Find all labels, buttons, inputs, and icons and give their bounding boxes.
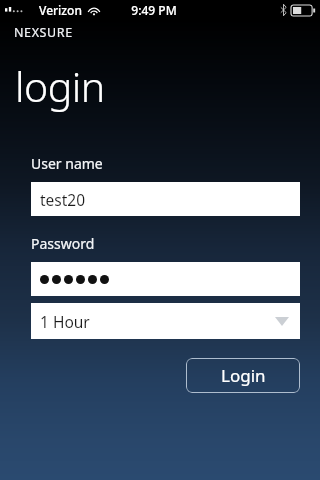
staticText: Verizon <box>39 2 82 18</box>
button[interactable]: test20 <box>31 182 300 216</box>
button[interactable]: Select duration <box>31 303 300 339</box>
staticText: 1 Hour <box>40 311 90 332</box>
staticText: NEXSURE <box>14 24 73 41</box>
staticText: 9:49 PM <box>131 2 177 18</box>
button[interactable]: Login <box>186 358 300 393</box>
staticText: Password <box>31 234 95 253</box>
staticText: login <box>15 58 105 114</box>
staticText: Login <box>221 364 266 387</box>
staticText: User name <box>31 154 103 173</box>
button[interactable] <box>31 262 300 296</box>
staticText: test20 <box>40 189 86 210</box>
